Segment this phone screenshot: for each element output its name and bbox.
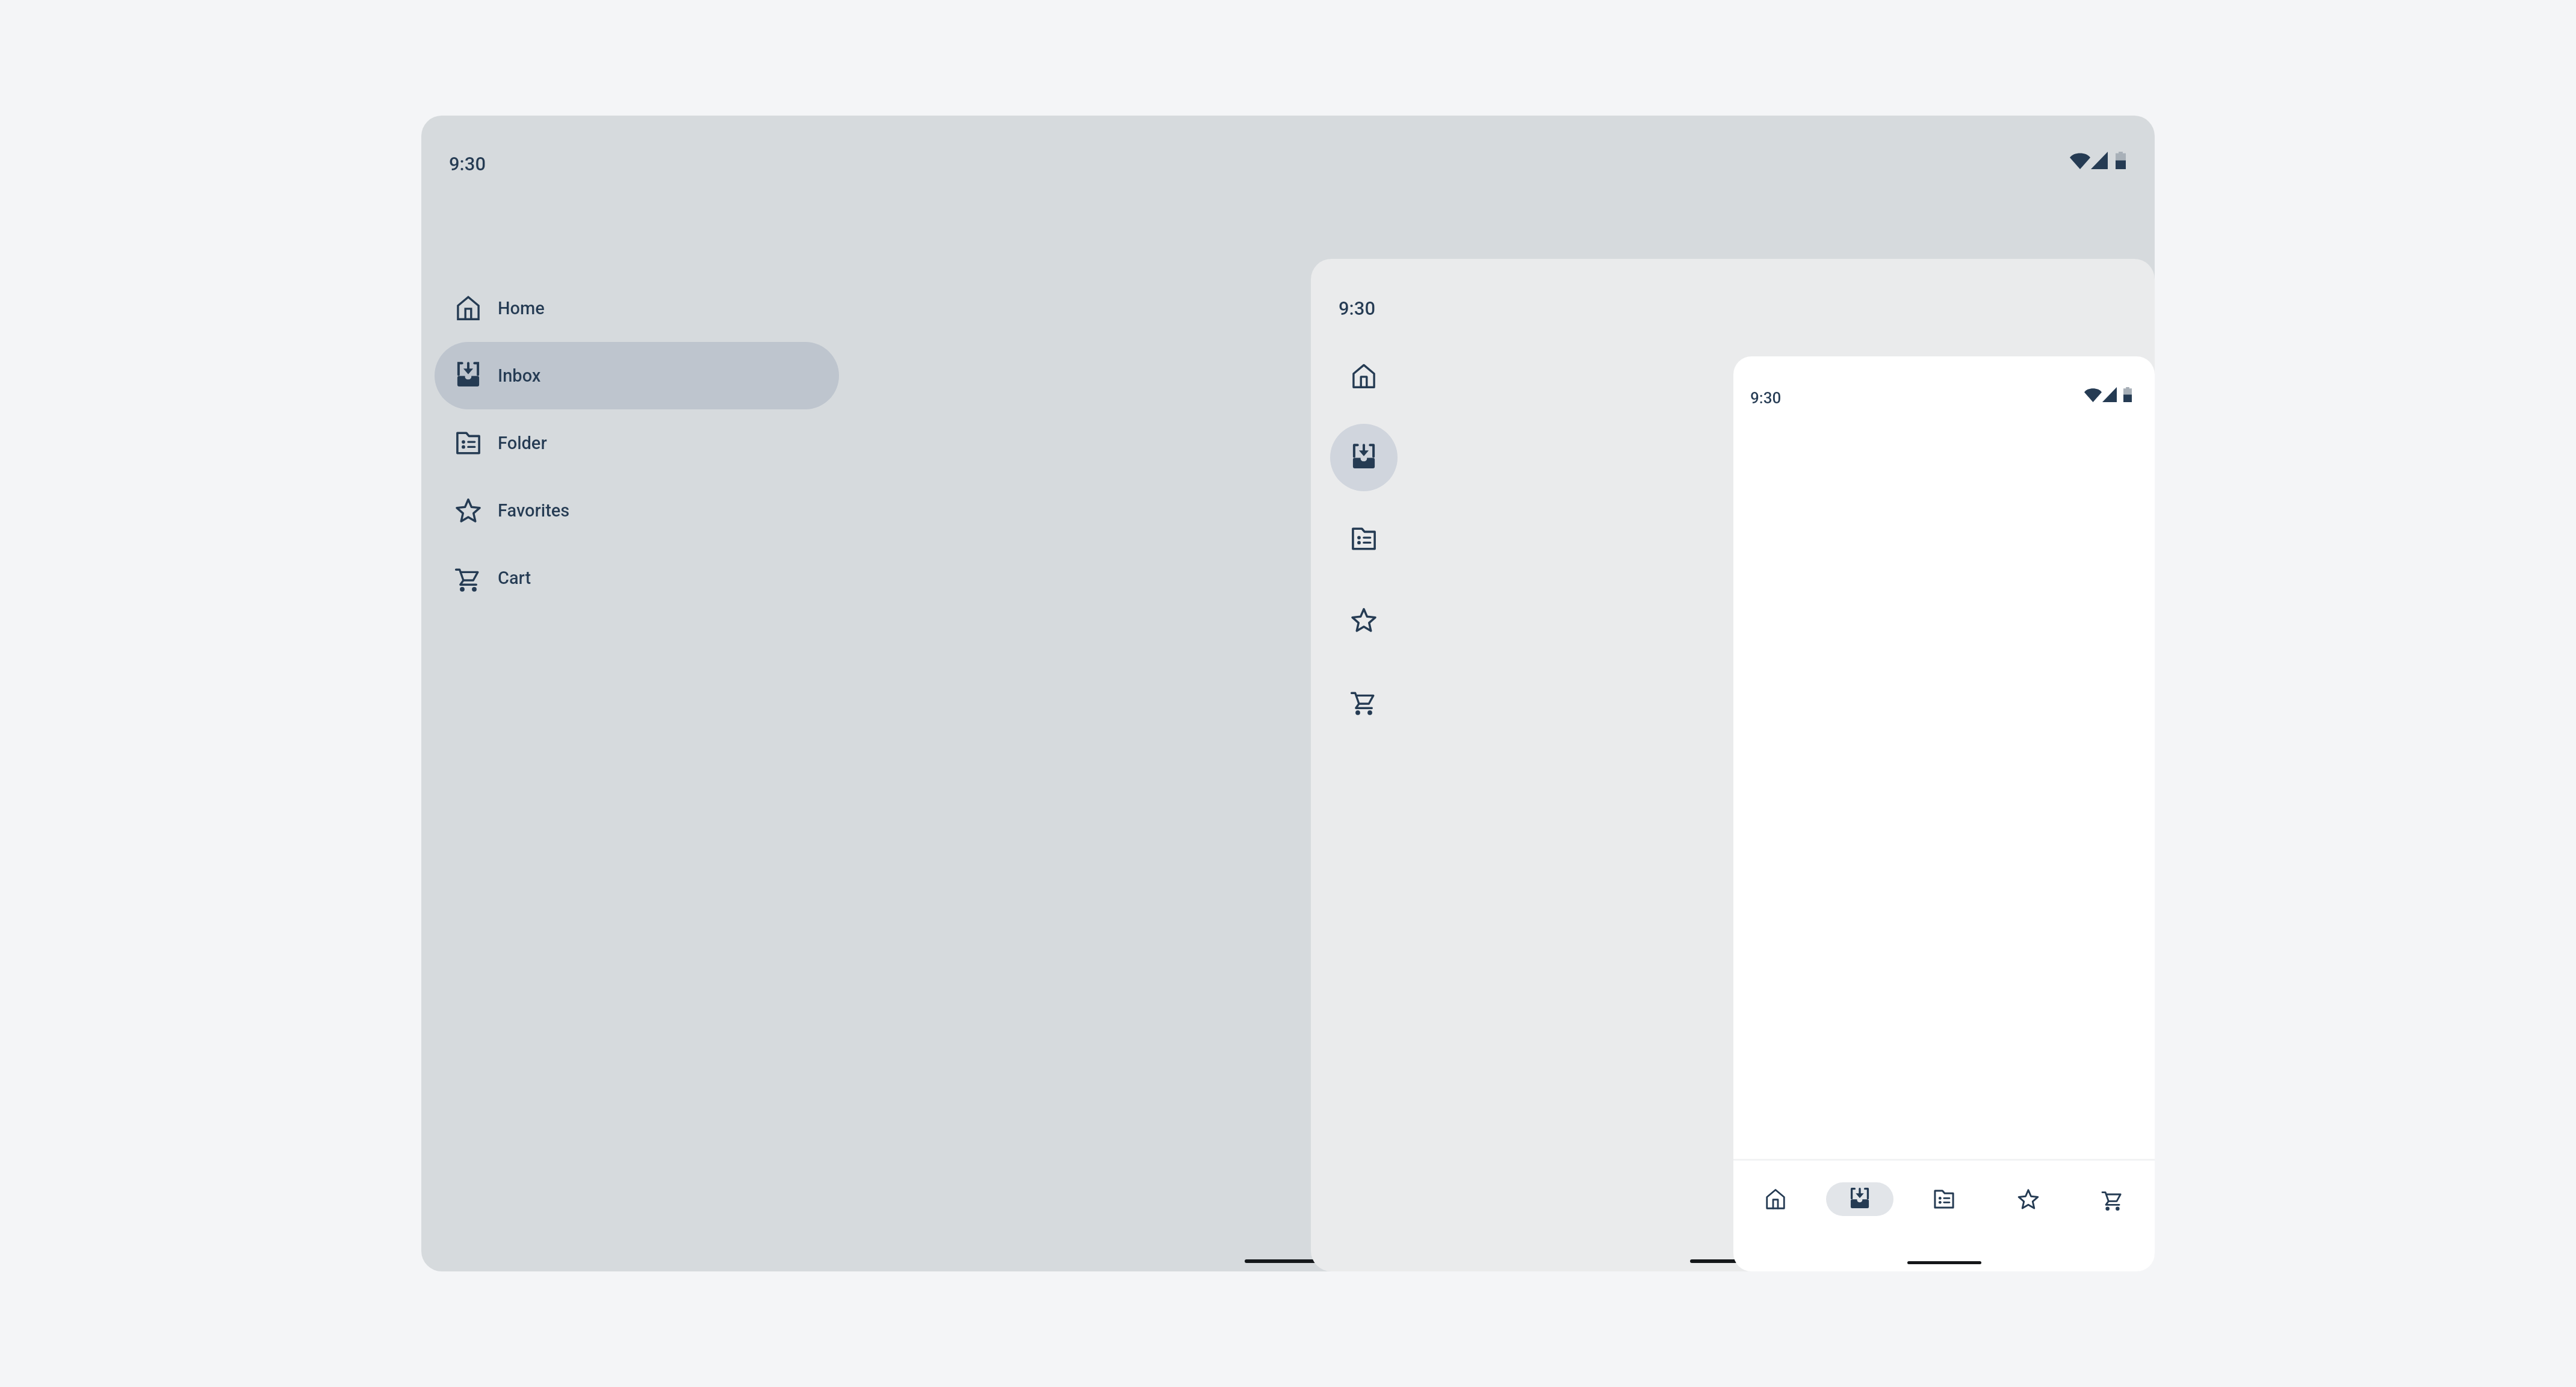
- button[interactable]: Inbox: [435, 342, 839, 409]
- button[interactable]: Home: [435, 275, 839, 342]
- button[interactable]: Inbox: [1330, 424, 1398, 491]
- button[interactable]: Cart: [1330, 668, 1398, 735]
- staticText: Folder: [498, 433, 547, 453]
- staticText: 9:30: [449, 153, 486, 175]
- button[interactable]: Home: [1330, 343, 1398, 410]
- staticText: Inbox: [498, 365, 541, 386]
- button[interactable]: Cart: [2079, 1182, 2146, 1216]
- button[interactable]: Home: [1742, 1182, 1809, 1216]
- staticText: Home: [498, 298, 545, 318]
- staticText: 9:30: [1339, 297, 1376, 319]
- button[interactable]: Cart: [435, 544, 839, 612]
- button[interactable]: Favorites: [1995, 1182, 2062, 1216]
- staticText: 9:30: [1750, 389, 1782, 407]
- button[interactable]: Folder: [1910, 1182, 1978, 1216]
- button[interactable]: Folder: [1330, 505, 1398, 572]
- button[interactable]: Favorites: [1330, 586, 1398, 654]
- button[interactable]: Inbox: [1826, 1182, 1893, 1216]
- staticText: Cart: [498, 568, 531, 588]
- button[interactable]: Favorites: [435, 477, 839, 544]
- staticText: Favorites: [498, 500, 570, 521]
- button[interactable]: Folder: [435, 409, 839, 477]
